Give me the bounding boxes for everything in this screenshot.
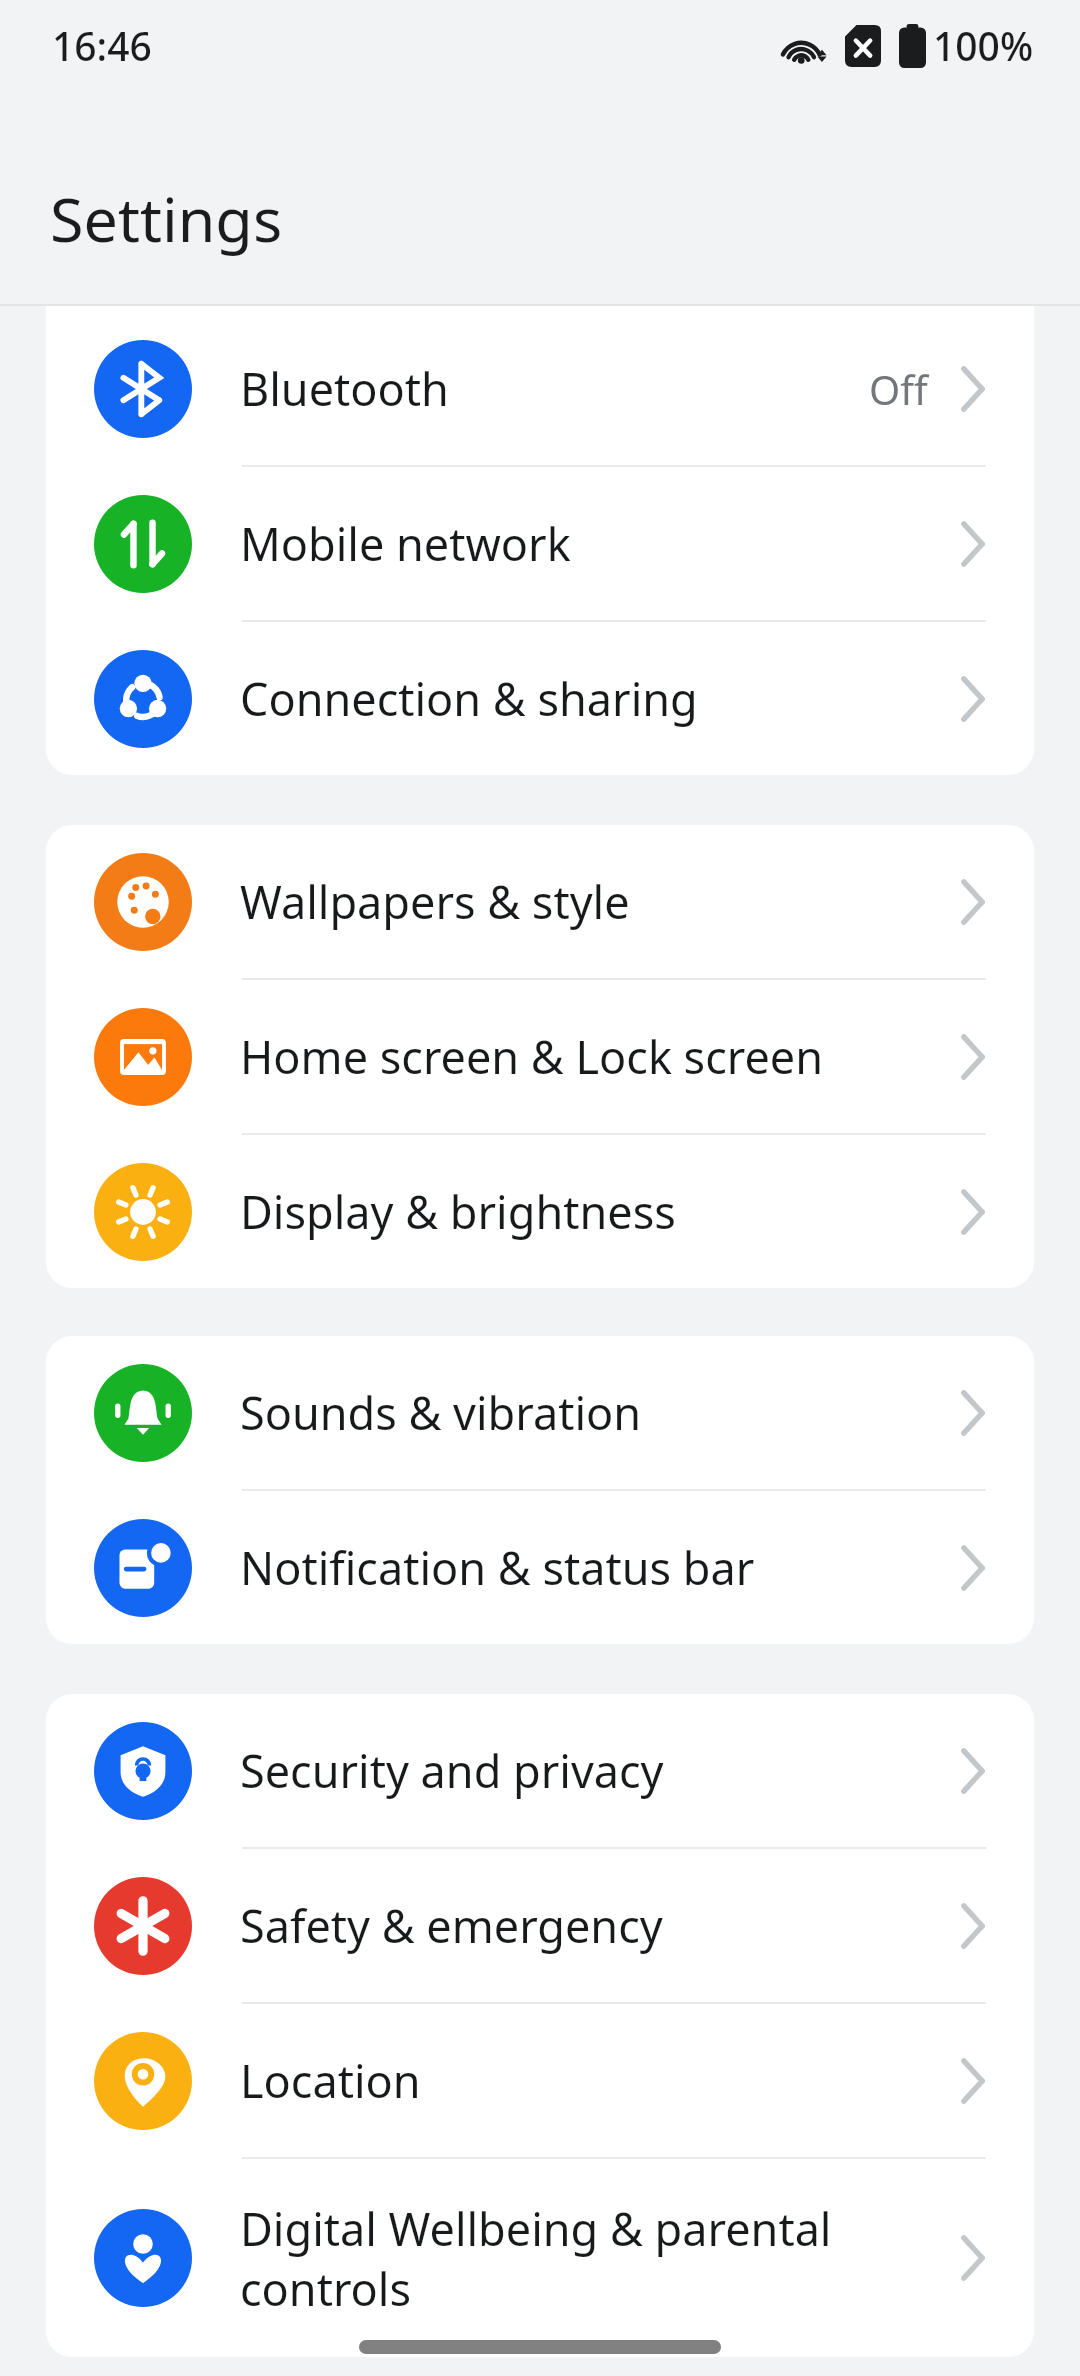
staticText: Security and privacy (240, 1740, 960, 1801)
button[interactable]: Security and privacy (46, 1694, 1034, 1847)
button[interactable]: Wallpapers & style (46, 825, 1034, 978)
staticText: Connection & sharing (240, 668, 960, 729)
button[interactable]: Display & brightness (46, 1135, 1034, 1288)
staticText: Sounds & vibration (240, 1382, 960, 1443)
staticText: Digital Wellbeing & parental controls (240, 2198, 960, 2319)
other: Open Display & brightness (960, 1188, 986, 1236)
other: Open Notification & status bar (960, 1544, 986, 1592)
other: Open Connection & sharing (960, 675, 986, 723)
button[interactable]: Location (46, 2004, 1034, 2157)
staticText: Settings (50, 177, 283, 260)
other: Open Digital Wellbeing & parental contro… (960, 2234, 986, 2282)
staticText: Wallpapers & style (240, 871, 960, 932)
staticText: Home screen & Lock screen (240, 1026, 960, 1087)
staticText: Location (240, 2050, 960, 2111)
button[interactable]: Digital Wellbeing & parental controls (46, 2159, 1034, 2357)
other: Open Location (960, 2057, 986, 2105)
staticText: 100% (933, 19, 1034, 72)
button[interactable]: Sounds & vibration (46, 1336, 1034, 1489)
staticText: Display & brightness (240, 1181, 960, 1242)
button[interactable]: Home screen & Lock screen (46, 980, 1034, 1133)
other: Open Home screen & Lock screen (960, 1033, 986, 1081)
other: Open Mobile network (960, 520, 986, 568)
button[interactable]: Bluetooth (46, 312, 1034, 465)
other: Open Security and privacy (960, 1747, 986, 1795)
staticText: Off (869, 362, 928, 416)
staticText: Bluetooth (240, 358, 869, 419)
other: Open Wallpapers & style (960, 878, 986, 926)
staticText: Safety & emergency (240, 1895, 960, 1956)
staticText: Mobile network (240, 513, 960, 574)
other: Open Sounds & vibration (960, 1389, 986, 1437)
other: Open Safety & emergency (960, 1902, 986, 1950)
button[interactable]: Notification & status bar (46, 1491, 1034, 1644)
staticText: 16:46 (52, 19, 152, 72)
staticText: Notification & status bar (240, 1537, 960, 1598)
button[interactable]: Safety & emergency (46, 1849, 1034, 2002)
other: Open Bluetooth (960, 365, 986, 413)
button[interactable]: Mobile network (46, 467, 1034, 620)
button[interactable]: Connection & sharing (46, 622, 1034, 775)
